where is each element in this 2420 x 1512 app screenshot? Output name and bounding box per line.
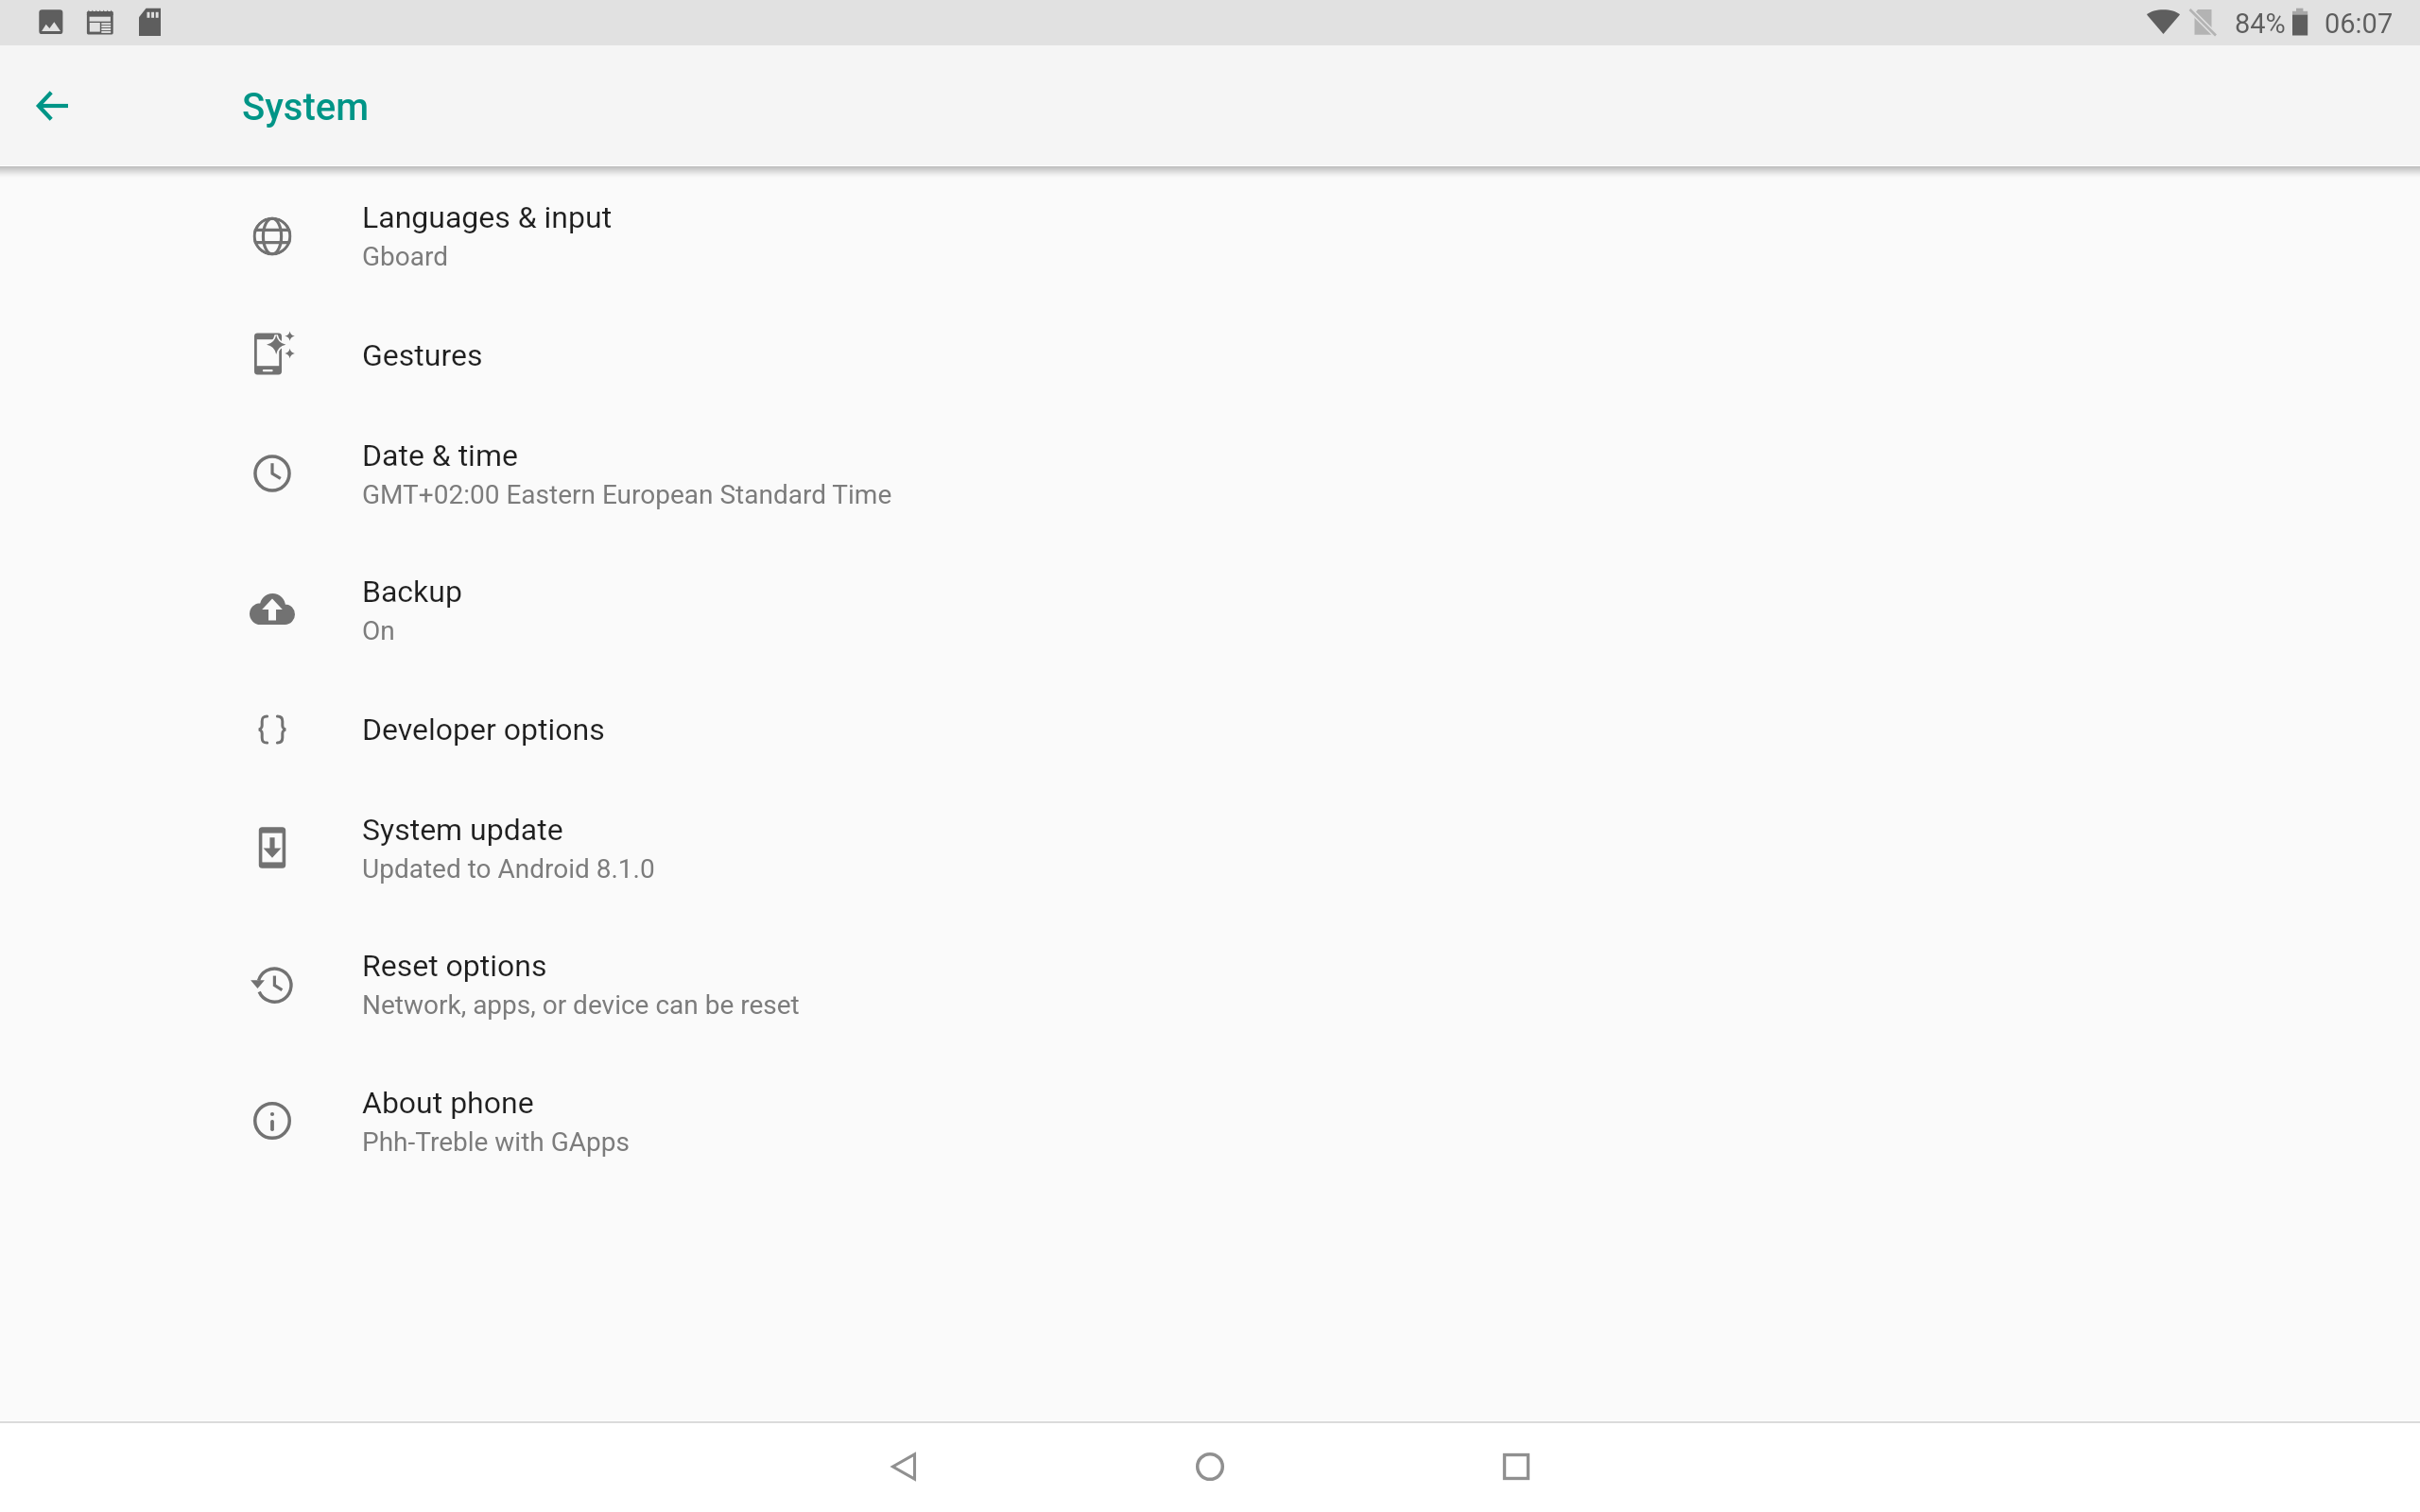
button[interactable]: Navigate up bbox=[15, 68, 91, 144]
staticText: Backup bbox=[362, 574, 462, 610]
staticText: Languages & input bbox=[362, 199, 613, 235]
staticText: On bbox=[362, 615, 395, 646]
button[interactable]: About phone bbox=[0, 1053, 2420, 1189]
staticText: System bbox=[242, 85, 369, 129]
button[interactable]: Gestures bbox=[0, 304, 2420, 405]
button[interactable]: Recent apps bbox=[1469, 1422, 1564, 1511]
staticText: Phh-Treble with GApps bbox=[362, 1126, 630, 1158]
staticText: Date & time bbox=[362, 438, 518, 473]
button[interactable]: System update bbox=[0, 780, 2420, 916]
staticText: Reset options bbox=[362, 948, 547, 984]
button[interactable]: Developer options bbox=[0, 679, 2420, 780]
staticText: Network, apps, or device can be reset bbox=[362, 989, 800, 1021]
button[interactable]: Backup bbox=[0, 541, 2420, 679]
staticText: 84% bbox=[2235, 8, 2286, 40]
staticText: Developer options bbox=[362, 712, 605, 747]
staticText: Gestures bbox=[362, 337, 483, 373]
button[interactable]: Back bbox=[856, 1422, 951, 1511]
button[interactable]: Languages & input bbox=[0, 167, 2420, 304]
staticText: System update bbox=[362, 812, 563, 848]
staticText: Gboard bbox=[362, 241, 449, 272]
staticText: GMT+02:00 Eastern European Standard Time bbox=[362, 479, 892, 510]
staticText: About phone bbox=[362, 1085, 534, 1121]
staticText: 06:07 bbox=[2325, 8, 2394, 40]
button[interactable]: Date & time bbox=[0, 405, 2420, 541]
staticText: Updated to Android 8.1.0 bbox=[362, 853, 655, 885]
button[interactable]: Home bbox=[1163, 1422, 1257, 1511]
button[interactable]: Reset options bbox=[0, 916, 2420, 1053]
